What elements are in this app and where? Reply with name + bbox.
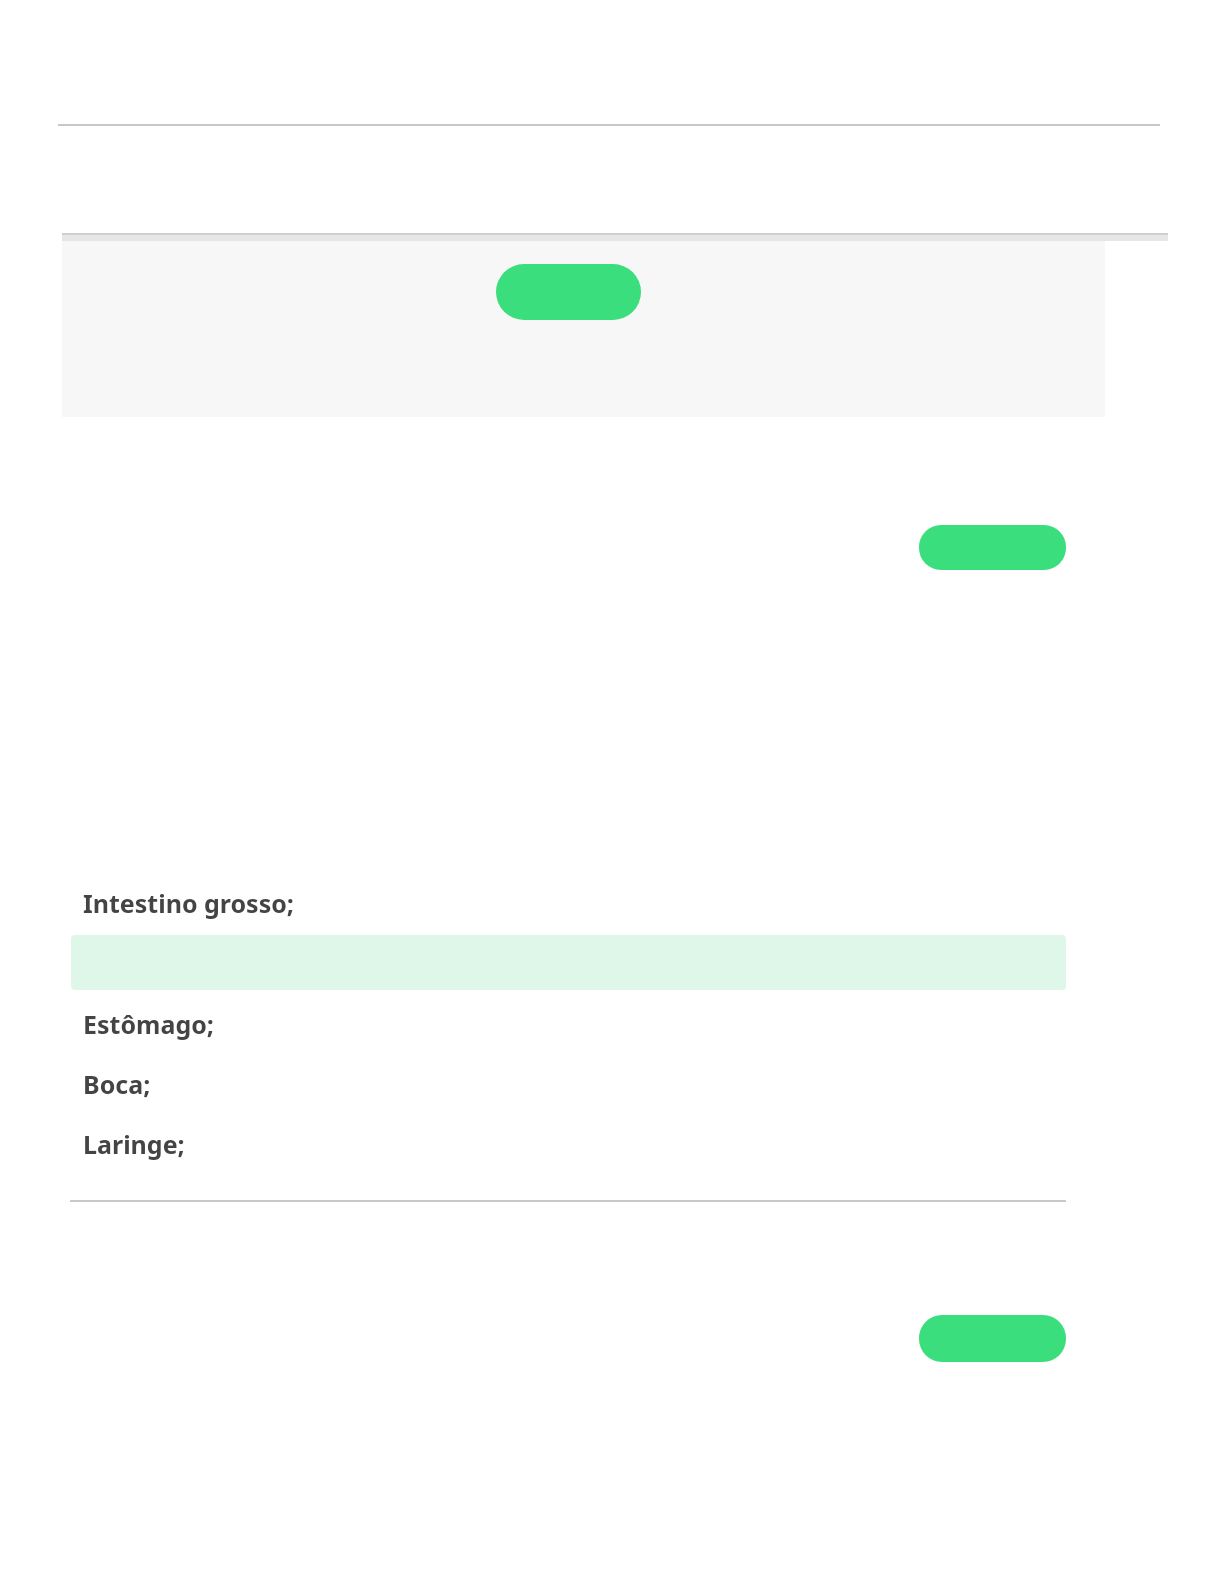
staticText: Estômago;: [83, 1007, 214, 1041]
button[interactable]: Laringe;: [71, 1121, 1066, 1161]
button[interactable]: Próxima: [919, 1315, 1066, 1362]
button[interactable]: Boca;: [71, 1061, 1066, 1101]
button[interactable]: Estômago;: [71, 1001, 1066, 1041]
staticText: Boca;: [83, 1067, 151, 1101]
button[interactable]: Continuar: [919, 525, 1066, 570]
button[interactable]: Intestino grosso;: [71, 880, 1066, 920]
staticText: Laringe;: [83, 1127, 185, 1161]
staticText: Intestino grosso;: [83, 886, 294, 920]
button[interactable]: Play: [496, 264, 641, 320]
